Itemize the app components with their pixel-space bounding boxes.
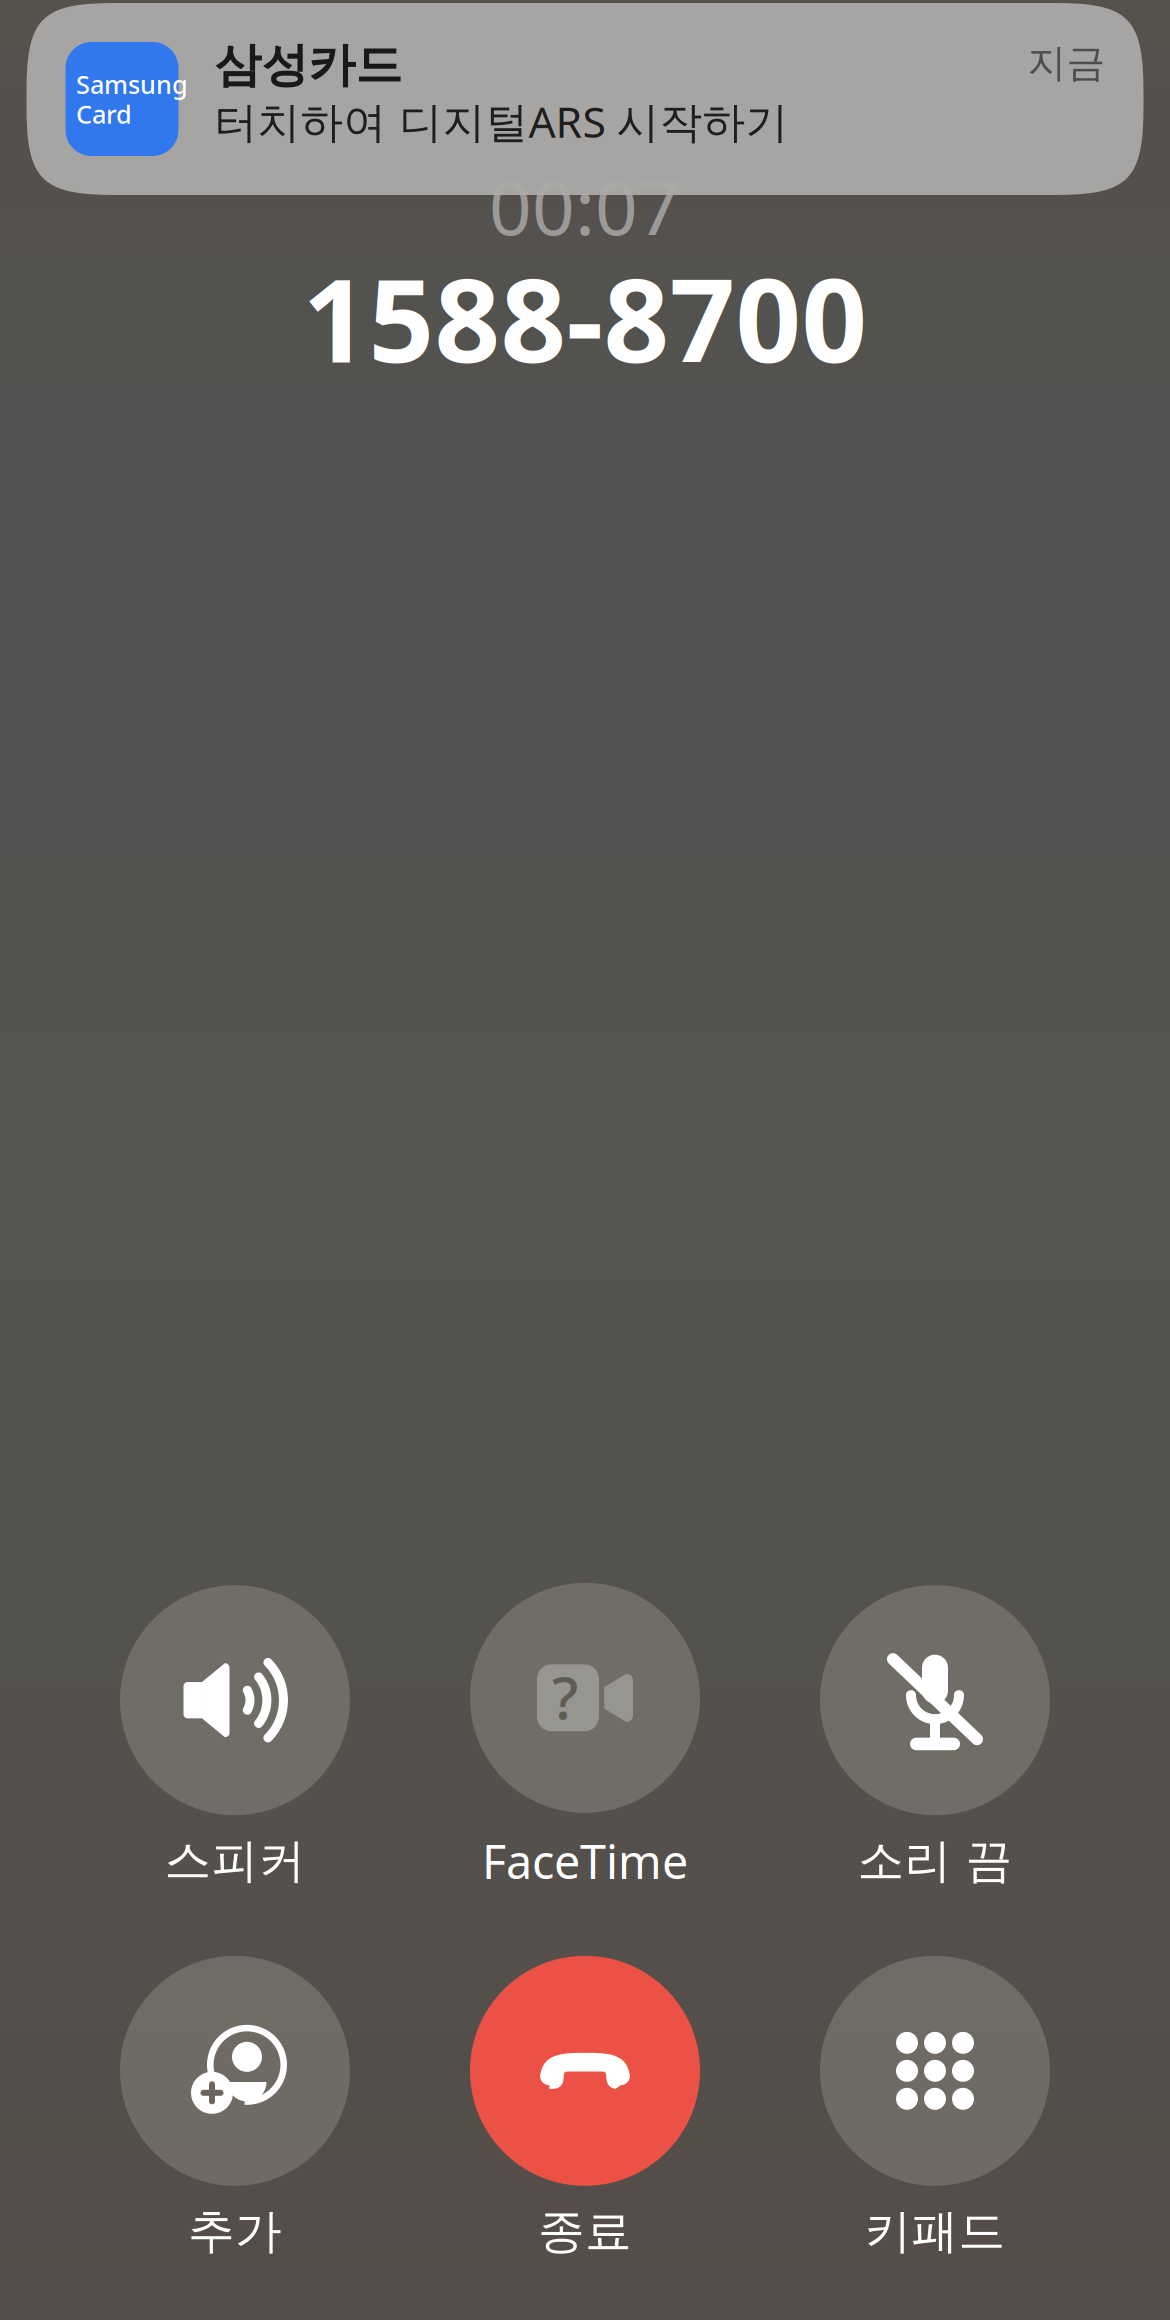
staticText: FaceTime xyxy=(482,1830,688,1892)
staticText: 소리 끔 xyxy=(857,1832,1012,1889)
staticText: Card xyxy=(76,97,132,131)
staticText: 스피커 xyxy=(164,1832,305,1889)
staticText: 1588-8700 xyxy=(302,242,867,394)
button[interactable]: Keypad xyxy=(780,1956,1090,2269)
staticText: ? xyxy=(552,1658,578,1736)
staticText: 삼성카드 xyxy=(214,36,402,94)
button[interactable]: FaceTime xyxy=(430,1583,740,1901)
staticText: 키패드 xyxy=(864,2203,1005,2260)
button[interactable]: Samsung xyxy=(0,0,1170,2320)
button[interactable]: End call xyxy=(430,1956,740,2269)
staticText: Samsung xyxy=(76,67,188,101)
staticText: 추가 xyxy=(188,2203,282,2260)
staticText: 터치하여 디지털ARS 시작하기 xyxy=(214,93,788,149)
button[interactable]: Speaker xyxy=(80,1585,390,1898)
staticText: 종료 xyxy=(538,2203,632,2260)
staticText: 지금 xyxy=(1027,39,1105,87)
button[interactable]: Mute xyxy=(780,1585,1090,1898)
button[interactable]: Add call xyxy=(80,1956,390,2269)
staticText: 00:07 xyxy=(489,156,681,256)
